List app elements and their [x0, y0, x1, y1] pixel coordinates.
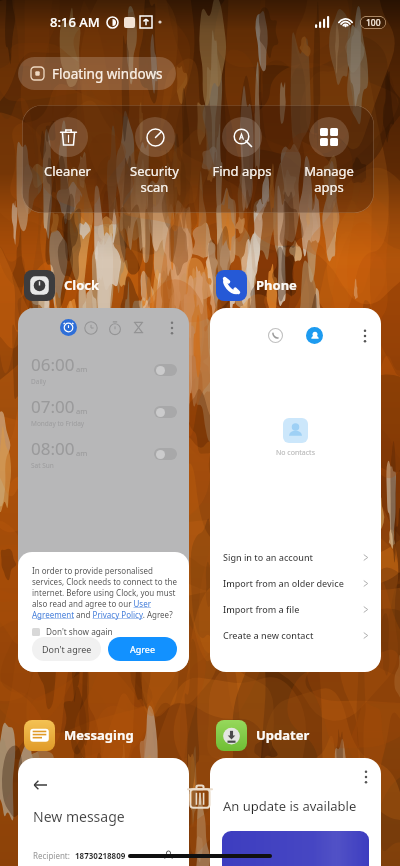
staticText: 100 — [366, 17, 381, 29]
staticText: 08:00 — [31, 437, 75, 460]
staticText: Daily — [31, 377, 47, 386]
staticText: Sign in to an account — [223, 551, 313, 563]
staticText: No contacts — [276, 448, 315, 458]
button[interactable]: Cleaner — [24, 117, 111, 180]
staticText: Security scan — [130, 162, 179, 195]
staticText: Clock — [64, 276, 100, 294]
button[interactable]: Sign in to an account — [210, 544, 381, 570]
button[interactable]: Back — [18, 758, 189, 866]
button[interactable]: Create a new contact — [210, 622, 381, 648]
button[interactable]: Don't show again — [32, 626, 113, 637]
staticText: Phone — [256, 276, 297, 294]
button[interactable]: Phone — [210, 268, 297, 302]
other: Close all — [185, 782, 215, 812]
button[interactable] — [154, 364, 177, 376]
button[interactable]: 06:00 — [31, 353, 177, 386]
button[interactable]: Don't agree — [32, 637, 101, 661]
other: Cleaner — [59, 128, 78, 147]
staticText: Import from an older device — [223, 577, 344, 589]
button[interactable]: Agree — [108, 637, 177, 661]
staticText: 07:00 — [31, 395, 75, 418]
staticText: am — [76, 406, 88, 416]
button[interactable]: 06:00 — [18, 308, 189, 672]
staticText: 06:00 — [31, 353, 75, 376]
other: Security scan — [146, 128, 165, 147]
button[interactable]: Messaging — [18, 718, 134, 752]
staticText: Cleaner — [44, 162, 91, 180]
button[interactable]: Find apps — [198, 117, 285, 180]
other: Manage apps — [320, 128, 338, 146]
staticText: Create a new contact — [223, 629, 314, 641]
other: Find apps — [233, 128, 252, 147]
button[interactable] — [154, 406, 177, 418]
other: Back — [33, 778, 47, 792]
staticText: Manage apps — [304, 162, 354, 195]
staticText: Updater — [256, 726, 310, 744]
button[interactable]: Security scan — [111, 117, 198, 195]
button[interactable]: Import from an older device — [210, 570, 381, 596]
staticText: Don't agree — [42, 643, 92, 655]
staticText: Messaging — [64, 726, 134, 744]
staticText: In order to provide personalised service… — [32, 565, 177, 620]
button[interactable]: Clock — [18, 268, 100, 302]
button[interactable]: Manage apps — [285, 117, 372, 195]
staticText: Find apps — [212, 162, 272, 180]
button[interactable]: Import from a file — [210, 596, 381, 622]
staticText: Monday to Friday — [31, 419, 85, 428]
button[interactable] — [154, 448, 177, 460]
staticText: Agree — [130, 643, 155, 655]
button[interactable]: 08:00 — [31, 437, 177, 470]
staticText: New message — [33, 807, 125, 826]
button[interactable]: Updater — [210, 718, 310, 752]
staticText: am — [76, 364, 88, 374]
staticText: Don't show again — [46, 626, 113, 637]
staticText: 8:16 AM — [50, 13, 100, 31]
staticText: Floating windows — [52, 65, 163, 83]
button[interactable]: No contacts — [210, 308, 381, 672]
button[interactable]: An update is available — [210, 758, 381, 866]
staticText: Recipient: — [33, 850, 70, 861]
staticText: Sat Sun — [31, 461, 54, 470]
button[interactable]: 07:00 — [31, 395, 177, 428]
staticText: Import from a file — [223, 603, 300, 615]
button[interactable]: Floating windows — [18, 57, 176, 90]
staticText: 18730218809 — [75, 850, 126, 861]
staticText: An update is available — [223, 797, 357, 815]
staticText: am — [76, 448, 88, 458]
